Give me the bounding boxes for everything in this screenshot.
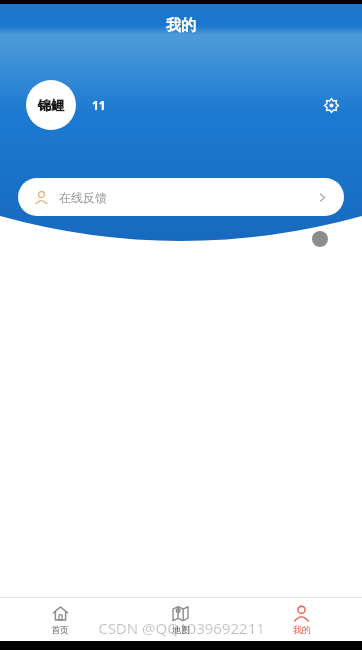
button[interactable]: 地图	[120, 598, 241, 641]
staticText: 我的	[166, 16, 196, 35]
button[interactable]: Avatar	[26, 80, 76, 130]
staticText: CSDN @QQ1039692211	[98, 618, 265, 638]
button[interactable]: 我的	[241, 598, 362, 641]
button[interactable]: 在线反馈	[18, 178, 344, 216]
staticText: 地图	[172, 624, 190, 635]
staticText: 锦鲤	[38, 97, 64, 113]
button[interactable]: Settings	[316, 90, 346, 120]
staticText: 11	[92, 97, 106, 113]
button[interactable]: 首页	[0, 598, 120, 641]
button[interactable]: Dot	[312, 231, 328, 247]
staticText: 在线反馈	[59, 190, 107, 205]
staticText: 我的	[293, 624, 311, 635]
staticText: 首页	[51, 624, 69, 635]
